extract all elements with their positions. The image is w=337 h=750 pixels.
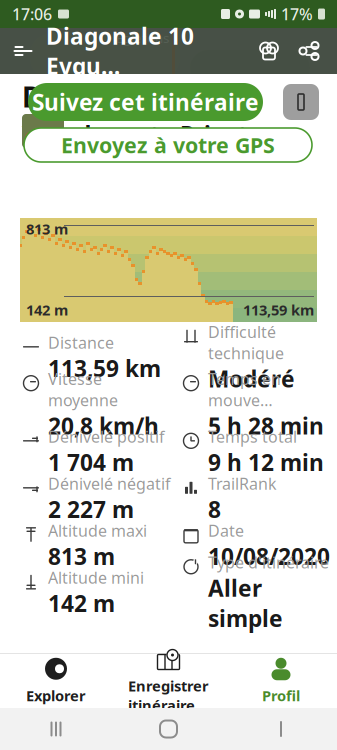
button[interactable]: Favori [249, 28, 289, 74]
button[interactable]: Enregistrer itinéraire [112, 654, 225, 708]
button[interactable]: Partager [289, 28, 329, 74]
button[interactable]: Retour [0, 28, 46, 74]
staticText: TrailRank [208, 473, 277, 494]
button[interactable]: Envoyez à votre GPS [24, 128, 312, 162]
staticText: 17% [281, 3, 313, 25]
button[interactable]: Applications récentes [0, 708, 112, 750]
staticText: 142 m [26, 300, 68, 319]
staticText: Date [208, 520, 244, 541]
staticText: Difficulté technique [208, 321, 284, 364]
staticText: 8 [208, 494, 221, 524]
staticText: Envoyez à votre GPS [61, 131, 275, 159]
button[interactable]: Suivez cet itinéraire [28, 83, 263, 121]
staticText: Temps en mouve… [208, 368, 281, 411]
staticText: Vélo de route [22, 119, 174, 149]
staticText: Dénivelé négatif [48, 473, 171, 494]
staticText: Egletons [116, 29, 169, 47]
staticText: Privat [180, 119, 248, 149]
staticText: Type d'itinéraire [208, 552, 329, 573]
button[interactable]: Modifier [283, 84, 319, 120]
staticText: Aller simple [208, 573, 283, 633]
staticText: 1 704 m [48, 447, 134, 477]
staticText: Vitesse moyenne [48, 368, 118, 411]
staticText: Diagonale 10 [22, 78, 202, 115]
staticText: Distance [48, 332, 114, 353]
staticText: Suivez cet itinéraire [32, 87, 259, 117]
staticText: 142 m [48, 588, 115, 618]
staticText: Tulle [62, 75, 86, 89]
staticText: 113,59 km [243, 300, 314, 319]
button[interactable]: Explorer [0, 654, 112, 708]
staticText: Altitude maxi [48, 520, 147, 541]
staticText: Modéré [208, 364, 295, 394]
staticText: 2 227 m [48, 494, 134, 524]
staticText: 9 h 12 min [208, 447, 324, 477]
button[interactable]: Accueil [112, 708, 225, 750]
staticText: 813 m [48, 541, 115, 571]
staticText: Enregistrer itinéraire [128, 676, 209, 715]
staticText: 813 m [26, 219, 68, 238]
staticText: 17:06 [12, 3, 52, 25]
staticText: Diagonale 10 Eygu… [46, 21, 194, 81]
staticText: Profil [262, 686, 300, 705]
staticText: 10/08/2020 [208, 541, 330, 571]
staticText: 113,59 km [48, 353, 161, 383]
button[interactable]: Profil [225, 654, 337, 708]
staticText: Temps total [208, 426, 297, 447]
staticText: 5 h 28 min [208, 411, 324, 441]
staticText: Dénivelé positif [48, 426, 165, 447]
staticText: 20,8 km/h [48, 411, 159, 441]
staticText: Altitude mini [48, 567, 144, 588]
staticText: Explorer [26, 686, 86, 705]
button[interactable]: Retour [225, 708, 337, 750]
